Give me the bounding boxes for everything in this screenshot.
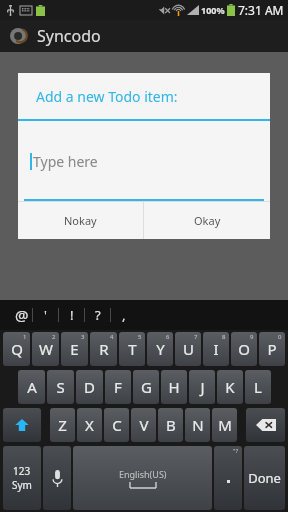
staticText: P	[267, 339, 277, 359]
staticText: Syncodo	[37, 25, 101, 47]
staticText: N	[192, 415, 204, 435]
staticText: H	[168, 377, 180, 397]
button[interactable]: P	[259, 332, 285, 366]
button[interactable]: G	[133, 370, 159, 404]
staticText: 8	[222, 333, 226, 341]
button[interactable]: E	[61, 332, 88, 366]
button[interactable]: At sign	[12, 305, 32, 325]
button[interactable]: W	[32, 332, 59, 366]
button[interactable]: Q	[3, 332, 30, 366]
staticText: Z	[58, 415, 67, 435]
staticText: 2	[52, 333, 56, 341]
button[interactable]: App icon	[10, 27, 28, 45]
staticText: Okay	[194, 213, 221, 228]
staticText: 3	[81, 333, 85, 341]
button[interactable]: Z	[50, 408, 75, 442]
staticText: E	[70, 339, 79, 359]
staticText: ,	[122, 306, 126, 324]
staticText: Sym	[12, 478, 32, 492]
button[interactable]: H	[161, 370, 187, 404]
staticText: English(US)	[119, 468, 167, 480]
staticText: 9	[250, 333, 254, 341]
button[interactable]: ?	[85, 302, 110, 328]
button[interactable]: J	[189, 370, 215, 404]
staticText: K	[225, 377, 235, 397]
button[interactable]: K	[217, 370, 243, 404]
staticText: D	[84, 377, 95, 397]
staticText: 4	[110, 333, 114, 341]
staticText: F	[114, 377, 122, 397]
staticText: U	[183, 339, 194, 359]
staticText: B	[166, 415, 176, 435]
staticText: 7	[194, 333, 198, 341]
button[interactable]: F	[105, 370, 131, 404]
button[interactable]: B	[158, 408, 183, 442]
staticText: X	[85, 415, 94, 435]
button[interactable]: C	[104, 408, 129, 442]
button[interactable]: Okay	[144, 202, 270, 239]
staticText: W	[39, 339, 53, 359]
button[interactable]: M	[212, 408, 237, 442]
staticText: V	[139, 415, 149, 435]
button[interactable]: ,	[111, 302, 136, 328]
staticText: Y	[156, 339, 165, 359]
staticText: M	[218, 415, 232, 435]
staticText: 100%	[201, 4, 225, 16]
button[interactable]: Space	[73, 446, 212, 510]
staticText: A	[27, 377, 37, 397]
button[interactable]: Y	[147, 332, 173, 366]
button[interactable]: Period	[214, 446, 242, 510]
staticText: I	[213, 339, 219, 359]
button[interactable]: Nokay	[18, 202, 143, 239]
staticText: T	[128, 339, 137, 359]
staticText: L	[254, 377, 262, 397]
staticText: R	[99, 339, 109, 359]
button[interactable]: !	[59, 302, 84, 328]
button[interactable]: A	[18, 370, 45, 404]
staticText: @	[15, 305, 29, 325]
button[interactable]: Shift	[3, 408, 41, 442]
staticText: ?	[95, 306, 101, 324]
staticText: Nokay	[64, 213, 97, 228]
staticText: 1	[23, 333, 27, 341]
staticText: C	[112, 415, 122, 435]
button[interactable]: U	[175, 332, 201, 366]
staticText: !	[70, 306, 74, 324]
staticText: 123	[13, 464, 31, 478]
staticText: Type here	[33, 152, 98, 171]
button[interactable]: V	[131, 408, 156, 442]
staticText: Add a new Todo item:	[36, 87, 178, 106]
staticText: 6	[166, 333, 170, 341]
button[interactable]: X	[77, 408, 102, 442]
button[interactable]: L	[245, 370, 271, 404]
button[interactable]: '	[33, 302, 58, 328]
staticText: G	[141, 377, 152, 397]
staticText: '	[44, 306, 47, 324]
button[interactable]: S	[47, 370, 74, 404]
button[interactable]: Backspace	[246, 408, 285, 442]
staticText: Q	[11, 339, 23, 359]
staticText: 7:31 AM	[238, 2, 284, 18]
staticText: S	[56, 377, 65, 397]
button[interactable]: I	[203, 332, 229, 366]
button[interactable]: Symbols	[3, 446, 41, 510]
button[interactable]: Voice input	[43, 446, 71, 510]
staticText: O	[238, 339, 250, 359]
staticText: 5	[138, 333, 142, 341]
button[interactable]: O	[231, 332, 257, 366]
staticText: 0	[278, 333, 282, 341]
staticText: J	[200, 377, 205, 397]
staticText: "?	[233, 447, 239, 455]
button[interactable]: T	[119, 332, 145, 366]
button[interactable]: N	[185, 408, 210, 442]
button[interactable]: D	[76, 370, 103, 404]
staticText: Done	[248, 469, 281, 487]
button[interactable]: Done	[244, 446, 285, 510]
button[interactable]: R	[90, 332, 117, 366]
